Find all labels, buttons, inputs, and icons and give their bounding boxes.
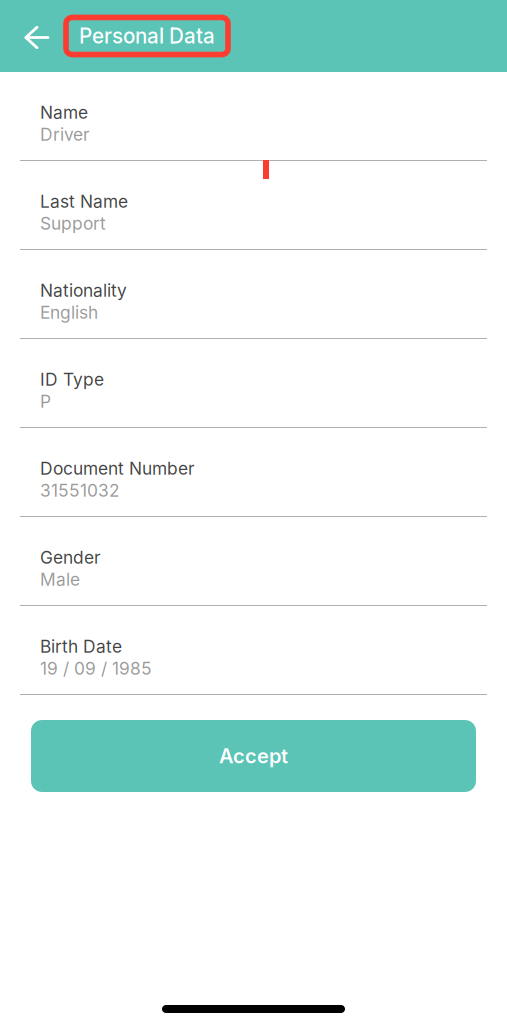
staticText: Accept [219, 744, 288, 768]
button[interactable]: Accept [31, 720, 476, 792]
staticText: Nationality [40, 280, 127, 301]
button[interactable]: ID Type [20, 339, 487, 428]
staticText: 19 / 09 / 1985 [40, 658, 152, 679]
button[interactable]: Document Number [20, 428, 487, 517]
staticText: Document Number [40, 458, 195, 479]
staticText: Male [40, 569, 80, 590]
button[interactable]: Back [15, 13, 60, 58]
button[interactable]: Last Name [20, 161, 487, 250]
staticText: Name [40, 102, 88, 123]
button[interactable]: Gender [20, 517, 487, 606]
staticText: Driver [40, 124, 90, 145]
staticText: Birth Date [40, 636, 122, 657]
staticText: English [40, 302, 98, 323]
staticText: Personal Data [79, 23, 215, 48]
staticText: Support [40, 213, 106, 234]
button[interactable]: Name [20, 72, 487, 161]
button[interactable]: Personal Data [60, 17, 228, 54]
staticText: Last Name [40, 191, 128, 212]
staticText: Gender [40, 547, 101, 568]
staticText: 31551032 [40, 480, 120, 501]
button[interactable]: Birth Date [20, 606, 487, 695]
staticText: ID Type [40, 369, 104, 390]
staticText: P [40, 391, 51, 412]
button[interactable]: Nationality [20, 250, 487, 339]
